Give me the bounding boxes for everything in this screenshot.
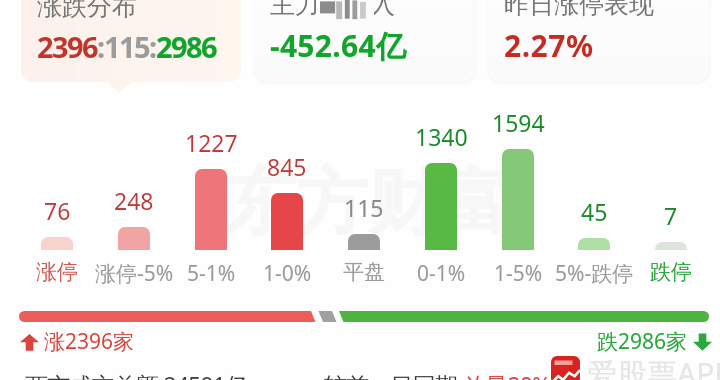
staticText: 昨日涨停表现 xyxy=(504,0,654,20)
staticText: 45 xyxy=(581,196,608,227)
staticText: 东方财富 xyxy=(224,158,512,249)
staticText: 平盘 xyxy=(343,259,385,285)
staticText: 115 xyxy=(344,192,384,223)
button[interactable]: 涨跌分布 xyxy=(21,0,241,82)
staticText: -452.64亿 xyxy=(270,25,407,66)
staticText: 爱股票APP xyxy=(587,353,720,380)
staticText: 涨停-5% xyxy=(95,259,174,288)
staticText: 涨停 xyxy=(36,259,78,285)
staticText: 845 xyxy=(267,151,307,182)
staticText: 1227 xyxy=(185,127,238,158)
staticText: 7 xyxy=(664,200,678,231)
staticText: : xyxy=(149,27,156,66)
staticText: 5%-跌停 xyxy=(555,259,634,288)
staticText: 1594 xyxy=(492,107,545,138)
staticText: 248 xyxy=(114,185,154,216)
staticText: 76 xyxy=(44,195,71,226)
staticText: 两市成交总额 24591亿 xyxy=(25,369,248,380)
staticText: 5-1% xyxy=(187,259,236,288)
staticText: 1-0% xyxy=(263,259,312,288)
staticText: 跌停 xyxy=(650,259,692,285)
staticText: 2.27% xyxy=(504,25,594,66)
staticText: 较前一日同期 xyxy=(324,369,463,380)
staticText: 1-5% xyxy=(494,259,543,288)
staticText: 跌2986家 xyxy=(597,327,688,356)
staticText: : xyxy=(97,27,104,66)
staticText: 2986 xyxy=(156,27,216,66)
staticText: 0-1% xyxy=(417,259,466,288)
staticText: 涨2396家 xyxy=(44,327,135,356)
button[interactable] xyxy=(19,311,709,322)
staticText: 涨跌分布 xyxy=(37,0,137,22)
staticText: 1340 xyxy=(415,121,468,152)
button[interactable]: 主力净流入 xyxy=(254,0,475,82)
staticText: 2396 xyxy=(37,27,97,66)
staticText: 115 xyxy=(104,27,149,66)
button[interactable]: 昨日涨停表现 xyxy=(488,0,709,82)
staticText: 放量20% xyxy=(463,369,551,380)
staticText: 主力净流入 xyxy=(270,0,395,20)
